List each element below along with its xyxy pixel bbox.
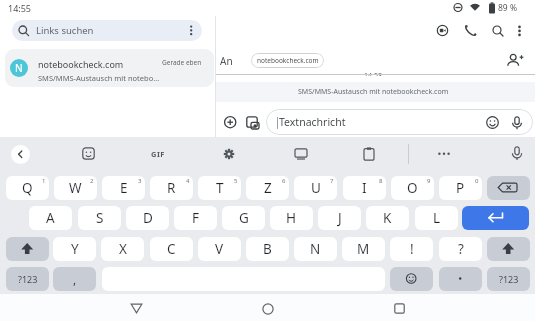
button[interactable] (130, 303, 143, 314)
staticText: 1 (42, 177, 46, 185)
staticText: E (120, 179, 128, 197)
button[interactable] (439, 267, 482, 291)
button[interactable]: J (318, 206, 361, 230)
staticText: U (311, 179, 321, 197)
button[interactable] (514, 24, 525, 38)
button[interactable]: M (342, 237, 385, 261)
staticText: N (310, 240, 321, 258)
staticText: O (407, 179, 418, 197)
button[interactable] (246, 116, 260, 130)
button[interactable]: C (150, 237, 193, 261)
button[interactable] (394, 303, 405, 314)
button[interactable]: I (343, 176, 386, 200)
button[interactable] (505, 52, 524, 69)
staticText: 4 (186, 177, 190, 185)
button[interactable] (450, 0, 496, 16)
button[interactable]: L (415, 206, 458, 230)
staticText: F (192, 209, 200, 227)
staticText: ?123 (18, 273, 38, 285)
staticText: 9 (427, 177, 431, 185)
button[interactable] (487, 176, 530, 200)
staticText: 5 (234, 177, 238, 185)
staticText: Q (22, 179, 33, 197)
button[interactable] (82, 147, 95, 160)
button[interactable]: Z (246, 176, 289, 200)
button[interactable] (222, 147, 236, 161)
button[interactable]: S (78, 206, 121, 230)
button[interactable] (487, 237, 530, 261)
button[interactable]: B (246, 237, 289, 261)
button[interactable] (186, 23, 198, 38)
button[interactable]: notebookcheck.com (251, 53, 324, 68)
button[interactable] (363, 147, 375, 161)
staticText: X (119, 240, 127, 258)
button[interactable] (6, 237, 49, 261)
button[interactable] (491, 24, 505, 38)
staticText: 6 (282, 177, 286, 185)
button[interactable]: N (5, 49, 214, 87)
button[interactable]: O (391, 176, 434, 200)
staticText: 3 (138, 177, 142, 185)
button[interactable]: P (439, 176, 482, 200)
button[interactable] (266, 109, 533, 135)
staticText: SMS/MMS-Austausch mit notebookcheck.com (298, 87, 449, 97)
staticText: I (362, 179, 367, 197)
staticText: R (167, 179, 176, 197)
button[interactable] (462, 206, 529, 230)
staticText: G (239, 209, 249, 227)
button[interactable]: , (53, 267, 96, 291)
button[interactable] (436, 24, 449, 37)
button[interactable] (12, 20, 202, 41)
staticText: Z (264, 179, 272, 197)
button[interactable] (511, 116, 523, 130)
button[interactable]: T (198, 176, 241, 200)
button[interactable]: R (150, 176, 193, 200)
staticText: N (15, 61, 23, 75)
button[interactable] (486, 116, 499, 129)
staticText: Gerade eben (162, 58, 202, 67)
staticText: Textnachricht (279, 115, 346, 129)
button[interactable] (294, 148, 308, 160)
button[interactable]: ? (439, 237, 482, 261)
button[interactable]: A (29, 206, 72, 230)
button[interactable]: G (222, 206, 265, 230)
button[interactable]: K (366, 206, 409, 230)
button[interactable] (224, 116, 237, 129)
staticText: 2 (90, 177, 94, 185)
button[interactable]: E (102, 176, 145, 200)
staticText: Links suchen (36, 24, 94, 37)
button[interactable] (437, 147, 451, 160)
button[interactable]: X (101, 237, 144, 261)
staticText: L (433, 209, 441, 227)
button[interactable]: F (174, 206, 217, 230)
staticText: 14:55 (8, 2, 32, 14)
button[interactable]: W (54, 176, 97, 200)
button[interactable] (464, 24, 478, 37)
staticText: GIF (151, 149, 165, 159)
staticText: notebookcheck.com (38, 58, 124, 70)
staticText: 7 (330, 177, 334, 185)
staticText: An (220, 54, 233, 68)
button[interactable]: ! (390, 237, 433, 261)
staticText: , (73, 271, 77, 287)
button[interactable] (390, 267, 433, 291)
staticText: P (456, 179, 465, 197)
button[interactable]: N (294, 237, 337, 261)
button[interactable]: Q (6, 176, 49, 200)
button[interactable]: H (270, 206, 313, 230)
button[interactable]: U (294, 176, 337, 200)
staticText: H (286, 209, 297, 227)
button[interactable] (511, 146, 523, 161)
button[interactable]: D (126, 206, 169, 230)
button[interactable]: ?123 (487, 267, 530, 291)
staticText: V (215, 240, 224, 258)
button[interactable] (262, 303, 274, 315)
staticText: Y (71, 240, 79, 258)
button[interactable] (16, 23, 31, 38)
button[interactable]: Y (53, 237, 96, 261)
button[interactable]: ?123 (6, 267, 49, 291)
button[interactable] (11, 145, 30, 164)
staticText: SMS/MMS-Austausch mit notebo... (38, 73, 160, 83)
button[interactable]: V (198, 237, 241, 261)
